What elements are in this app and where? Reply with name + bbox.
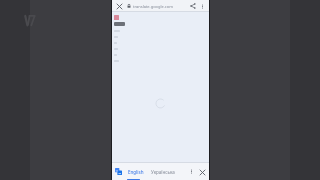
staticText: English [128,169,144,175]
button[interactable]: Translate options [187,167,196,176]
staticText: translate.google.com [133,4,173,9]
staticText: Українська [151,169,175,175]
button[interactable] [114,22,125,26]
button[interactable]: More options [198,2,207,11]
button[interactable]: Share [188,1,198,11]
button[interactable]: Close translate bar [197,167,207,177]
button[interactable]: Google Translate [114,167,123,176]
button[interactable]: Close [114,1,124,11]
button[interactable]: Українська [149,169,177,175]
button[interactable]: translate.google.com [127,0,188,12]
button[interactable]: English [126,169,146,175]
